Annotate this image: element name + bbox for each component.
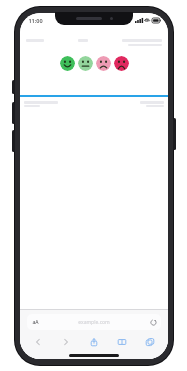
button[interactable]: Forward <box>52 333 80 350</box>
button[interactable]: Back <box>24 333 52 350</box>
staticText: aA <box>32 319 39 326</box>
staticText: example.com <box>78 319 110 326</box>
button[interactable]: Good <box>78 56 93 71</box>
button[interactable]: Bookmarks <box>108 333 136 350</box>
button[interactable]: Poor <box>96 56 111 71</box>
button[interactable]: Reload page <box>148 317 158 327</box>
button[interactable]: Share <box>80 333 108 350</box>
button[interactable]: Very poor <box>114 56 129 71</box>
staticText: 11:00 <box>28 17 43 24</box>
button[interactable]: Very good <box>60 56 75 71</box>
button[interactable]: Text size options <box>27 314 161 330</box>
button[interactable]: Tabs <box>136 333 164 350</box>
button[interactable]: Text size options <box>31 318 40 327</box>
